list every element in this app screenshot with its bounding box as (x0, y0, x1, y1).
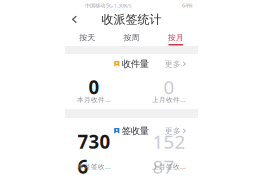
staticText: 按天 (79, 33, 95, 42)
staticText: 本月签收量 (77, 162, 111, 171)
button[interactable]: 按周 (109, 28, 154, 46)
staticText: 收件量 (122, 58, 149, 70)
staticText: 按周 (123, 33, 139, 42)
button[interactable]: 更多 (159, 124, 186, 138)
staticText: 收派签统计 (101, 12, 161, 27)
staticText: 15287 (152, 129, 185, 179)
staticText: 上月收件量 (152, 95, 186, 104)
staticText: 按月 (168, 33, 184, 42)
staticText: 签收量 (122, 125, 149, 137)
staticText: 64% (182, 2, 192, 9)
staticText: 上月签收量 (152, 162, 186, 171)
button[interactable]: 按天 (65, 28, 109, 46)
staticText: 本月收件量 (77, 95, 111, 104)
button[interactable]: 按月 (154, 28, 198, 46)
button[interactable]: 更多 (159, 57, 186, 71)
staticText: 更多 (165, 59, 181, 69)
staticText: 中国移动 5G 1.30K/s (85, 2, 132, 9)
staticText: 更多 (165, 126, 181, 136)
staticText: 7306 (77, 129, 110, 179)
button[interactable]: Back (67, 11, 82, 27)
staticText: 0 (163, 75, 174, 99)
staticText: 0 (88, 75, 99, 99)
